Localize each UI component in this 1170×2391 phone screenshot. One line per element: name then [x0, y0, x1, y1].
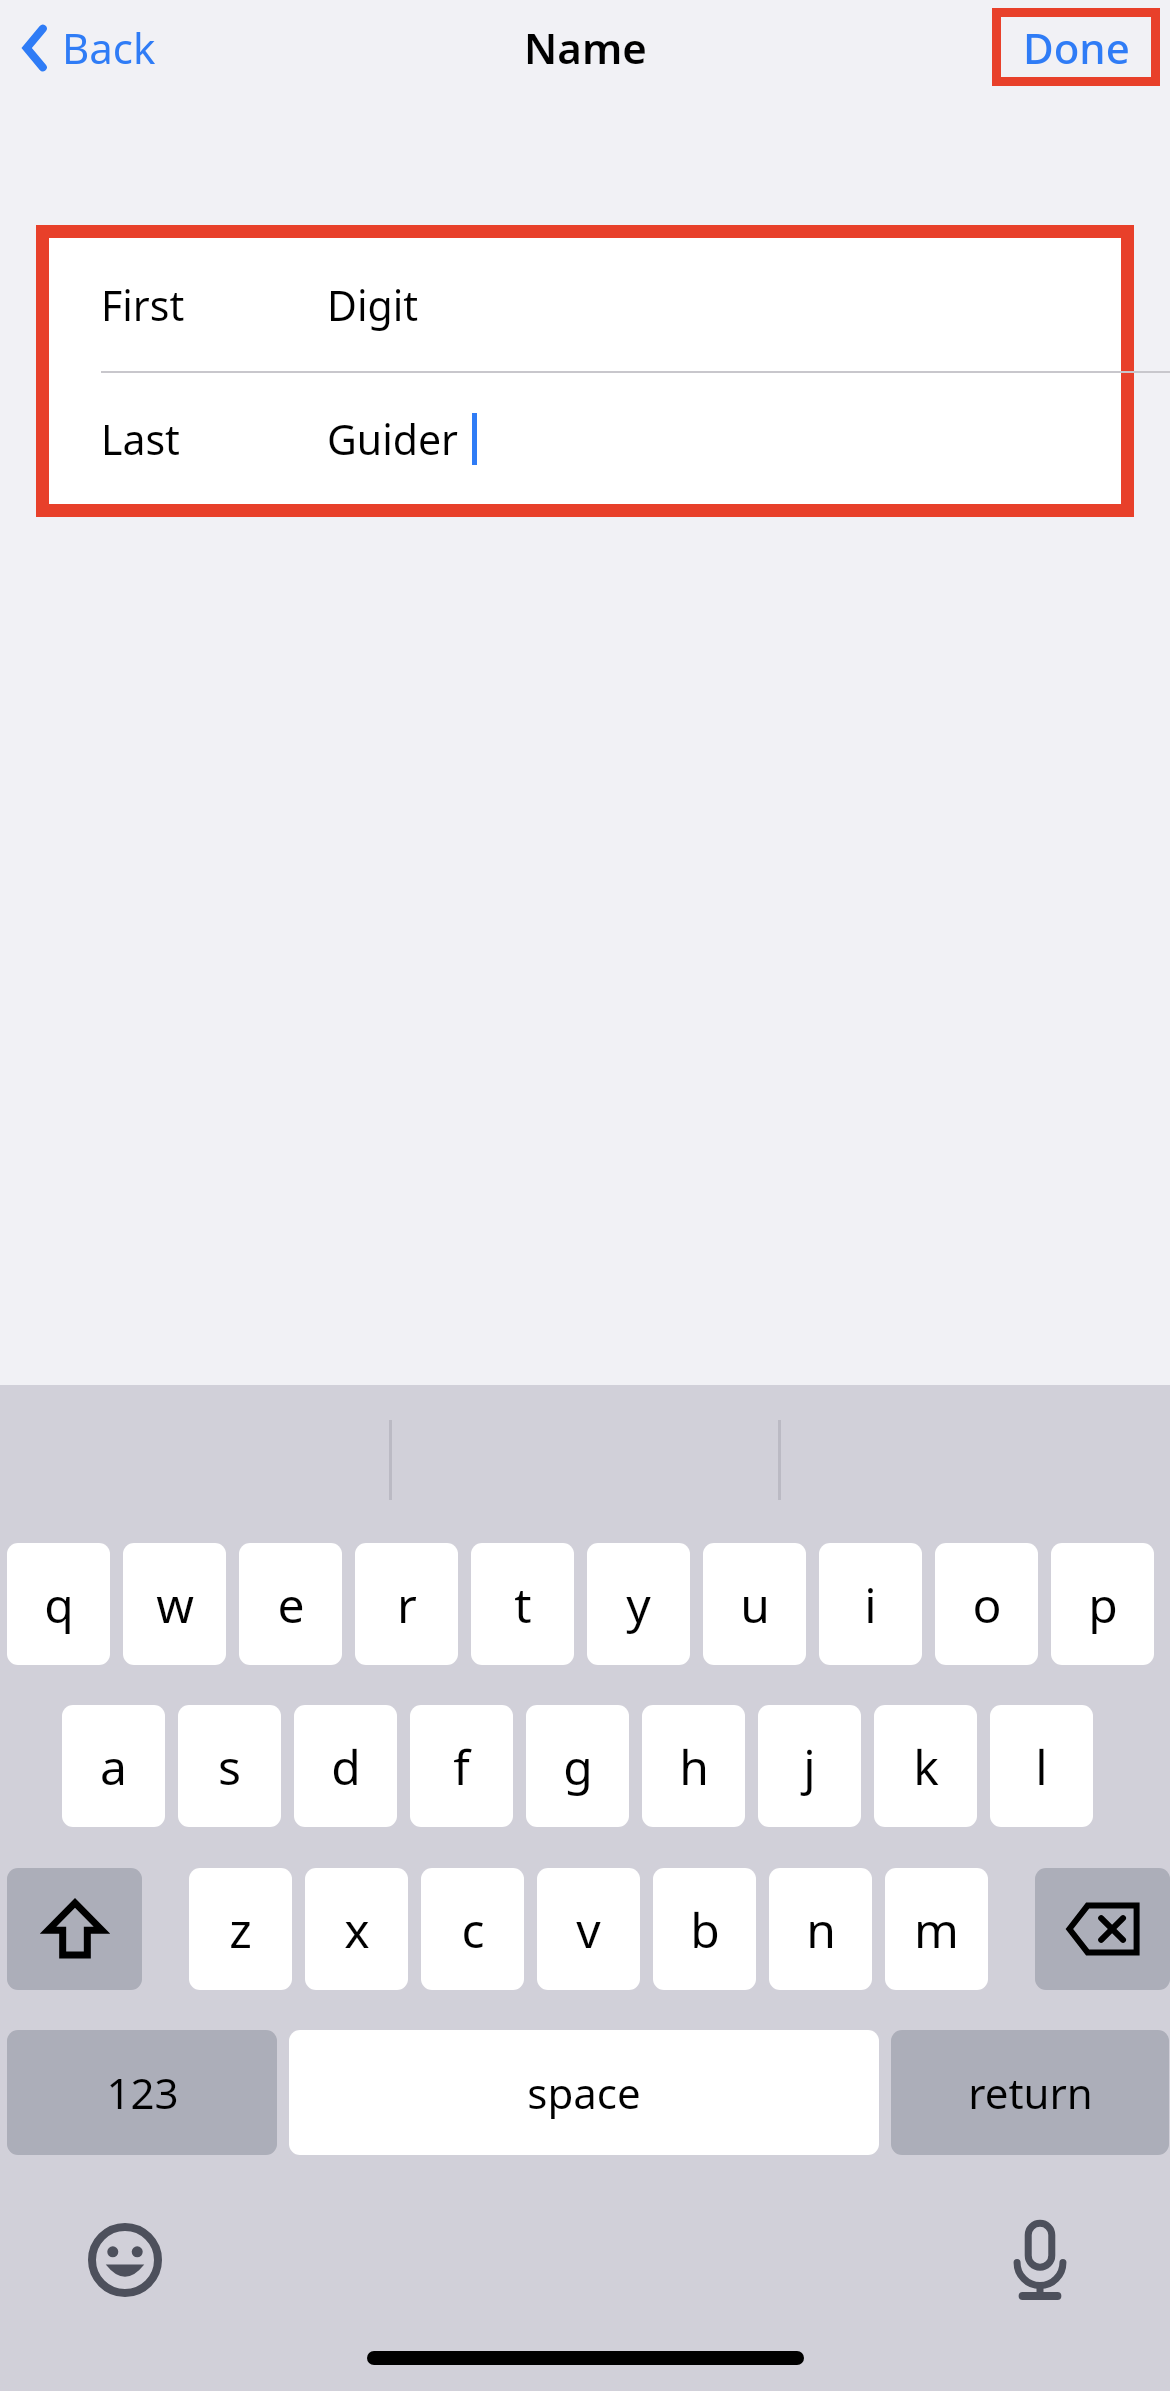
button[interactable]: b: [653, 1868, 756, 1990]
button[interactable]: return: [891, 2030, 1169, 2155]
staticText: space: [527, 2064, 641, 2121]
button[interactable]: s: [178, 1705, 281, 1827]
staticText: s: [218, 1734, 241, 1799]
staticText: y: [626, 1572, 651, 1637]
button[interactable]: o: [935, 1543, 1038, 1665]
staticText: Back: [62, 19, 156, 76]
button[interactable]: u: [703, 1543, 806, 1665]
staticText: e: [277, 1572, 305, 1637]
staticText: return: [968, 2064, 1093, 2121]
staticText: n: [806, 1897, 836, 1962]
button[interactable]: j: [758, 1705, 861, 1827]
staticText: Done: [1023, 19, 1130, 76]
staticText: c: [461, 1897, 485, 1962]
button[interactable]: r: [355, 1543, 458, 1665]
button[interactable]: Backspace: [1035, 1868, 1170, 1990]
button[interactable]: space: [289, 2030, 879, 2155]
staticText: Last: [101, 411, 180, 467]
staticText: Guider: [327, 411, 459, 467]
staticText: m: [914, 1897, 959, 1962]
button[interactable]: z: [189, 1868, 292, 1990]
staticText: j: [803, 1734, 816, 1799]
staticText: b: [690, 1897, 720, 1962]
button[interactable]: c: [421, 1868, 524, 1990]
button[interactable]: h: [642, 1705, 745, 1827]
button[interactable]: Last: [49, 373, 1121, 504]
button[interactable]: Dictation: [985, 2205, 1095, 2315]
button[interactable]: e: [239, 1543, 342, 1665]
button[interactable]: a: [62, 1705, 165, 1827]
button[interactable]: v: [537, 1868, 640, 1990]
staticText: t: [514, 1572, 532, 1637]
staticText: k: [913, 1734, 939, 1799]
button[interactable]: Back: [14, 11, 164, 84]
button[interactable]: x: [305, 1868, 408, 1990]
staticText: w: [156, 1572, 194, 1637]
button[interactable]: l: [990, 1705, 1093, 1827]
staticText: f: [453, 1734, 470, 1799]
staticText: o: [972, 1572, 1002, 1637]
staticText: a: [100, 1734, 127, 1799]
staticText: i: [864, 1572, 877, 1637]
staticText: q: [44, 1572, 74, 1637]
staticText: First: [101, 277, 185, 333]
button[interactable]: w: [123, 1543, 226, 1665]
staticText: x: [344, 1897, 370, 1962]
staticText: 123: [106, 2064, 179, 2121]
staticText: Name: [524, 19, 647, 76]
button[interactable]: Emoji keyboard: [70, 2205, 180, 2315]
button[interactable]: i: [819, 1543, 922, 1665]
staticText: l: [1035, 1734, 1048, 1799]
staticText: Digit: [327, 277, 419, 333]
button[interactable]: g: [526, 1705, 629, 1827]
button[interactable]: p: [1051, 1543, 1154, 1665]
button[interactable]: k: [874, 1705, 977, 1827]
button[interactable]: t: [471, 1543, 574, 1665]
staticText: d: [331, 1734, 361, 1799]
button[interactable]: m: [885, 1868, 988, 1990]
staticText: v: [576, 1897, 601, 1962]
button[interactable]: Shift: [7, 1868, 142, 1990]
staticText: r: [397, 1572, 417, 1637]
button[interactable]: First: [49, 238, 1121, 371]
button[interactable]: q: [7, 1543, 110, 1665]
button[interactable]: 123: [7, 2030, 277, 2155]
button[interactable]: d: [294, 1705, 397, 1827]
button[interactable]: y: [587, 1543, 690, 1665]
staticText: u: [740, 1572, 770, 1637]
staticText: z: [229, 1897, 252, 1962]
staticText: h: [679, 1734, 709, 1799]
button[interactable]: Done: [1001, 17, 1151, 77]
button[interactable]: n: [769, 1868, 872, 1990]
staticText: p: [1088, 1572, 1118, 1637]
staticText: g: [563, 1734, 593, 1799]
button[interactable]: f: [410, 1705, 513, 1827]
